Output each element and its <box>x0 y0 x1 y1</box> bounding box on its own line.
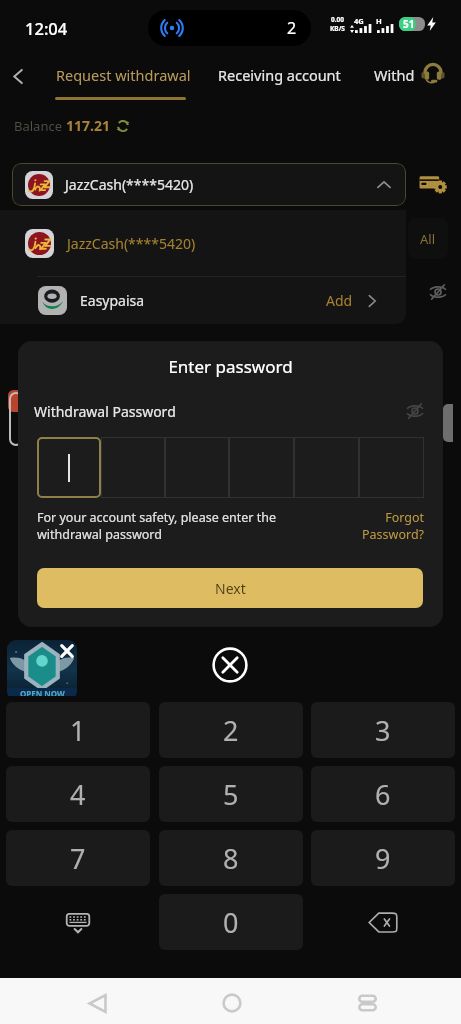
button[interactable]: 5 <box>159 766 303 822</box>
button[interactable]: Easypaisa <box>0 277 406 324</box>
staticText: Receiving account <box>218 65 341 85</box>
staticText: 5 <box>223 776 239 813</box>
staticText: 3 <box>375 712 391 749</box>
staticText: 8 <box>223 840 239 877</box>
staticText: 7 <box>70 840 86 877</box>
button[interactable] <box>229 437 294 498</box>
button[interactable]: Hide keyboard <box>6 894 150 950</box>
button[interactable]: Home <box>212 983 252 1023</box>
staticText: KB/S <box>330 24 345 33</box>
staticText: 117.21 <box>66 116 110 135</box>
staticText: Next <box>215 579 246 598</box>
staticText: JazzCash(****5420) <box>65 175 194 194</box>
staticText: 12:04 <box>25 17 68 39</box>
staticText: OPEN NOW <box>20 688 65 699</box>
button[interactable]: Back <box>77 983 117 1023</box>
button[interactable]: Hide balance <box>421 275 455 309</box>
button[interactable]: Customer support <box>416 57 450 91</box>
staticText: 51 <box>403 17 415 31</box>
staticText: 4G <box>354 16 364 26</box>
button[interactable]: All <box>408 218 448 259</box>
staticText: Withdrawal Password <box>34 402 176 421</box>
staticText: 9 <box>375 840 391 877</box>
staticText: Easypaisa <box>80 291 145 310</box>
button[interactable] <box>165 437 229 498</box>
staticText: 2 <box>223 712 239 749</box>
staticText: 2 <box>287 17 297 39</box>
staticText: JazzCash(****5420) <box>67 234 196 253</box>
staticText: Enter password <box>18 355 443 378</box>
button[interactable]: Back <box>0 56 38 96</box>
button[interactable]: Promotion banner <box>7 640 77 700</box>
button[interactable]: JazzCash(****5420) <box>12 163 406 206</box>
button[interactable]: 0 <box>159 894 303 950</box>
staticText: Balance <box>14 117 66 135</box>
button[interactable]: 8 <box>159 830 303 886</box>
button[interactable] <box>101 437 165 498</box>
button[interactable]: 6 <box>311 766 455 822</box>
button[interactable]: Next <box>37 568 423 608</box>
staticText: 4 <box>70 776 86 813</box>
button[interactable]: 4 <box>6 766 150 822</box>
button[interactable]: Receiving account <box>214 55 345 95</box>
staticText: Add <box>326 291 353 310</box>
button[interactable]: Backspace <box>311 894 455 950</box>
button[interactable]: 2 <box>159 702 303 758</box>
button[interactable]: Request withdrawal <box>52 55 195 95</box>
button[interactable]: 1 <box>6 702 150 758</box>
button[interactable]: 3 <box>311 702 455 758</box>
staticText: 1 <box>70 712 86 749</box>
button[interactable] <box>359 437 424 498</box>
staticText: 6 <box>375 776 391 813</box>
button[interactable]: JazzCash(****5420) <box>0 210 406 276</box>
button[interactable]: 7 <box>6 830 150 886</box>
staticText: H <box>376 16 382 26</box>
staticText: 0.00 <box>331 15 344 24</box>
staticText: All <box>420 230 436 248</box>
button[interactable]: Show password <box>403 399 427 423</box>
staticText: Request withdrawal <box>56 65 191 85</box>
button[interactable]: Recent apps <box>347 983 387 1023</box>
staticText: Withd <box>374 65 415 85</box>
button[interactable]: Withd <box>370 55 419 95</box>
staticText: For your account safety, please enter th… <box>37 509 299 543</box>
button[interactable]: Manage payment methods <box>416 166 450 200</box>
staticText: 0 <box>223 904 239 941</box>
button[interactable] <box>37 437 101 498</box>
button[interactable]: Forgot Password? <box>362 509 424 543</box>
button[interactable]: Close promotion <box>59 643 75 659</box>
button[interactable]: 9 <box>311 830 455 886</box>
button[interactable] <box>294 437 359 498</box>
staticText: Forgot Password? <box>362 509 424 543</box>
button[interactable]: Close dialog <box>212 647 248 683</box>
